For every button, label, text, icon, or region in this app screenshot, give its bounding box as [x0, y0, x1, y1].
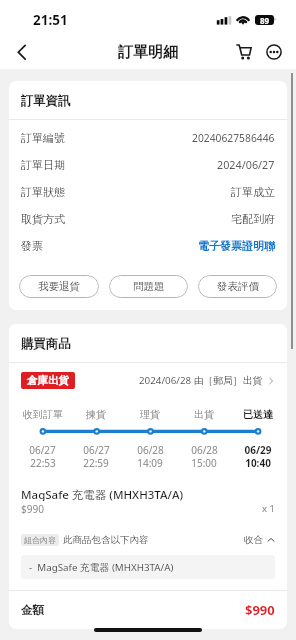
staticText: - MagSafe 充電器 (MHXH3TA/A): [29, 561, 174, 574]
staticText: $990: [21, 502, 44, 515]
staticText: 宅配到府: [231, 212, 275, 226]
staticText: 訂單編號: [21, 131, 65, 145]
staticText: 14:09: [137, 456, 163, 468]
staticText: 06/29: [244, 443, 272, 455]
staticText: 訂單日期: [21, 158, 65, 172]
staticText: $990: [245, 601, 275, 619]
staticText: 89: [260, 15, 270, 25]
staticText: MagSafe 充電器 (MHXH3TA/A): [21, 487, 184, 501]
button[interactable]: 我要退貨: [19, 275, 99, 298]
staticText: 電子發票證明聯: [198, 239, 275, 253]
staticText: 發表評價: [217, 280, 259, 293]
staticText: 21:51: [33, 11, 68, 29]
staticText: 06/27: [83, 443, 110, 455]
button[interactable]: 收合: [244, 534, 275, 546]
staticText: 我要退貨: [38, 280, 80, 293]
button[interactable]: 發表評價: [198, 275, 277, 298]
staticText: 收合: [244, 534, 263, 546]
staticText: 10:40: [245, 456, 271, 468]
staticText: 收到訂單: [23, 408, 63, 420]
staticText: 已送達: [243, 408, 273, 420]
staticText: 問題題: [133, 280, 165, 293]
staticText: 2024/06/28 由［郵局］出貨: [139, 374, 263, 387]
staticText: 06/28: [137, 443, 164, 455]
button[interactable]: Back: [0, 33, 42, 69]
staticText: 倉庫出貨: [27, 374, 69, 387]
staticText: 金額: [21, 603, 44, 617]
staticText: 發票: [21, 239, 43, 253]
staticText: 06/27: [29, 443, 56, 455]
staticText: 理貨: [140, 408, 160, 420]
staticText: 2024/06/27: [217, 157, 275, 172]
button[interactable]: Cart: [229, 36, 259, 66]
staticText: 此商品包含以下內容: [63, 534, 149, 546]
staticText: 20240627586446: [192, 131, 275, 145]
button[interactable]: 問題題: [109, 275, 188, 298]
staticText: 訂單成立: [231, 185, 275, 199]
button[interactable]: 倉庫出貨: [21, 372, 275, 389]
staticText: 22:53: [30, 456, 56, 468]
staticText: 訂單狀態: [21, 185, 65, 199]
staticText: 購買商品: [21, 336, 71, 351]
staticText: 取貨方式: [21, 212, 65, 226]
button[interactable]: More options: [259, 36, 289, 66]
staticText: 訂單明細: [118, 43, 178, 62]
staticText: 出貨: [194, 408, 214, 420]
staticText: 組合內容: [24, 535, 56, 545]
staticText: x 1: [262, 502, 275, 515]
staticText: 22:59: [83, 456, 109, 468]
staticText: 揀貨: [86, 408, 106, 420]
staticText: 15:00: [191, 456, 217, 468]
staticText: 訂單資訊: [21, 93, 71, 108]
staticText: 06/28: [191, 443, 218, 455]
